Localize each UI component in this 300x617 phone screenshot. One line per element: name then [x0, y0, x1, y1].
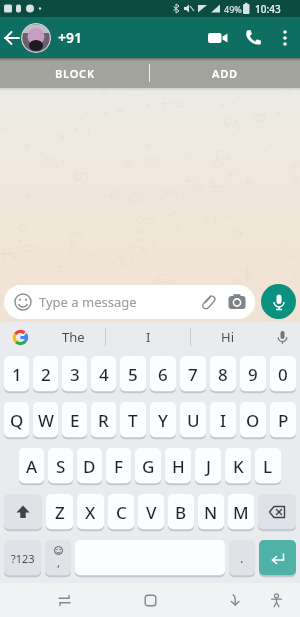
staticText: E	[70, 409, 80, 432]
staticText: F	[114, 455, 123, 478]
button[interactable]: T	[120, 402, 146, 438]
button[interactable]	[130, 583, 170, 617]
button[interactable]: ,	[45, 540, 71, 576]
staticText: I	[146, 328, 151, 346]
button[interactable]: .	[229, 540, 255, 576]
button[interactable]: U	[180, 402, 206, 438]
staticText: T	[128, 409, 138, 432]
button[interactable]: V	[138, 494, 164, 530]
button[interactable]: +91	[0, 17, 83, 58]
button[interactable]: 5	[120, 356, 146, 392]
staticText: ?123	[11, 551, 35, 566]
staticText: 5	[128, 363, 138, 386]
button[interactable]	[44, 583, 84, 617]
button[interactable]: R	[91, 402, 116, 438]
button[interactable]	[259, 540, 296, 576]
staticText: U	[187, 409, 200, 432]
button[interactable]: 4	[91, 356, 116, 392]
button[interactable]	[4, 494, 42, 530]
button[interactable]: L	[255, 448, 281, 484]
staticText: BLOCK	[55, 66, 95, 81]
button[interactable]: P	[270, 402, 296, 438]
button[interactable]: I	[210, 402, 236, 438]
button[interactable]: N	[198, 494, 224, 530]
staticText: V	[146, 501, 157, 524]
button[interactable]: A	[19, 448, 44, 484]
button[interactable]: 7	[180, 356, 206, 392]
staticText: 3	[70, 363, 80, 386]
staticText: 2	[41, 363, 51, 386]
staticText: Q	[10, 409, 24, 432]
staticText: 6	[158, 363, 168, 386]
staticText: B	[175, 501, 187, 524]
button[interactable]: 9	[240, 356, 266, 392]
staticText: J	[206, 455, 211, 478]
staticText: A	[26, 455, 38, 478]
button[interactable]: 1	[4, 356, 29, 392]
button[interactable]: G	[135, 448, 161, 484]
button[interactable]: ADD	[150, 58, 300, 88]
staticText: X	[85, 501, 96, 524]
staticText: C	[116, 501, 127, 524]
staticText: ADD	[212, 66, 238, 81]
button[interactable]	[236, 17, 270, 58]
button[interactable]: X	[77, 494, 104, 530]
button[interactable]: 2	[33, 356, 58, 392]
button[interactable]: BLOCK	[0, 58, 149, 88]
button[interactable]: C	[108, 494, 134, 530]
staticText: W	[38, 409, 54, 432]
staticText: +91	[58, 28, 83, 47]
button[interactable]	[261, 284, 296, 319]
button[interactable]: K	[225, 448, 251, 484]
staticText: G	[142, 455, 155, 478]
button[interactable]: O	[240, 402, 266, 438]
staticText: 4	[99, 363, 109, 386]
staticText: 7	[188, 363, 198, 386]
staticText: Y	[158, 409, 168, 432]
button[interactable]: H	[165, 448, 191, 484]
button[interactable]	[200, 17, 236, 58]
button[interactable]	[0, 322, 41, 352]
staticText: The	[62, 328, 85, 346]
button[interactable]: 3	[62, 356, 87, 392]
staticText: 9	[248, 363, 258, 386]
button[interactable]	[216, 583, 254, 617]
button[interactable]: D	[77, 448, 102, 484]
button[interactable]: Q	[4, 402, 29, 438]
button[interactable]: Type a message	[4, 285, 255, 319]
button[interactable]: S	[48, 448, 73, 484]
button[interactable]: M	[228, 494, 254, 530]
staticText: Type a message	[39, 293, 137, 311]
staticText: Z	[55, 501, 65, 524]
button[interactable]: I	[106, 322, 190, 352]
button[interactable]: F	[106, 448, 131, 484]
button[interactable]	[264, 322, 300, 352]
button[interactable]: 8	[210, 356, 236, 392]
button[interactable]: ?123	[4, 540, 41, 576]
button[interactable]: The	[41, 322, 105, 352]
button[interactable]	[270, 17, 300, 58]
button[interactable]: Z	[46, 494, 73, 530]
button[interactable]: Y	[150, 402, 176, 438]
staticText: O	[246, 409, 260, 432]
staticText: 49%	[224, 3, 242, 15]
button[interactable]: W	[33, 402, 58, 438]
button[interactable]: 6	[150, 356, 176, 392]
staticText: Hi	[221, 328, 234, 346]
staticText: L	[263, 455, 273, 478]
staticText: K	[233, 455, 244, 478]
button[interactable]: E	[62, 402, 87, 438]
button[interactable]: B	[168, 494, 194, 530]
staticText: 8	[218, 363, 228, 386]
button[interactable]: Hi	[191, 322, 264, 352]
button[interactable]	[75, 540, 225, 576]
button[interactable]	[258, 494, 296, 530]
button[interactable]	[258, 583, 294, 617]
staticText: ,	[57, 555, 60, 570]
button[interactable]: 0	[270, 356, 296, 392]
staticText: I	[220, 409, 227, 432]
staticText: 0	[278, 363, 288, 386]
staticText: S	[56, 455, 66, 478]
button[interactable]: J	[195, 448, 221, 484]
staticText: P	[278, 409, 289, 432]
